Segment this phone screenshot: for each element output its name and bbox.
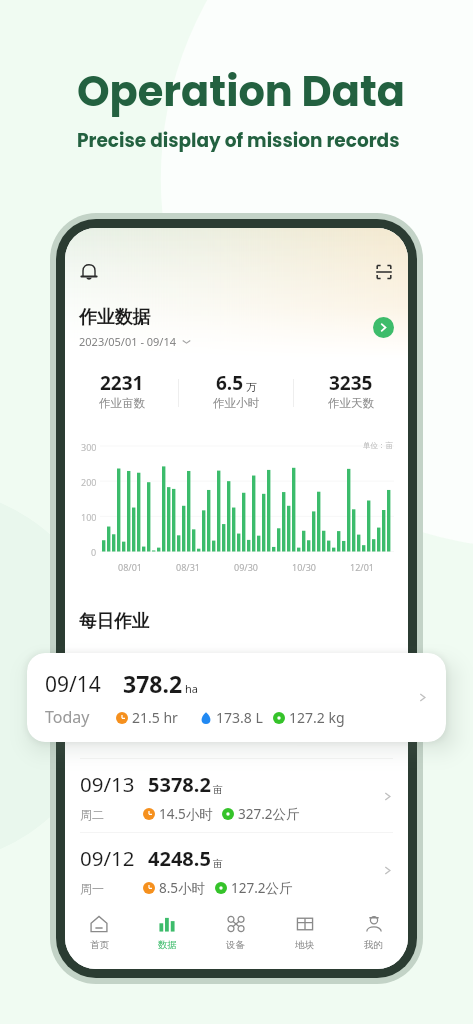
staticText: 我的: [364, 939, 383, 951]
staticText: 作业小时: [213, 396, 259, 410]
staticText: 万: [246, 380, 257, 394]
button[interactable]: 首页: [65, 901, 133, 969]
staticText: 地块: [295, 939, 314, 951]
button[interactable]: 09/14: [27, 653, 446, 742]
staticText: 09/30: [234, 561, 258, 573]
staticText: 0: [91, 546, 97, 558]
staticText: 亩: [213, 857, 223, 870]
staticText: 数据: [158, 939, 177, 951]
staticText: 单位：亩: [363, 441, 393, 450]
staticText: 10/30: [292, 561, 316, 573]
staticText: Today: [45, 706, 90, 728]
button[interactable]: 地块: [270, 901, 339, 969]
staticText: 327.2公斤: [238, 805, 300, 823]
button[interactable]: 09/12: [65, 833, 408, 907]
button[interactable]: 设备: [201, 901, 270, 969]
staticText: 亩: [213, 783, 223, 796]
button[interactable]: 数据: [133, 901, 201, 969]
staticText: 09/12: [80, 844, 135, 872]
button[interactable]: Scan: [374, 262, 394, 282]
staticText: 127.2公斤: [231, 879, 293, 897]
staticText: ha: [185, 681, 198, 696]
staticText: 08/31: [176, 561, 200, 573]
staticText: 首页: [90, 939, 109, 951]
staticText: 2023/05/01 - 09/14: [79, 334, 177, 349]
staticText: 09/13: [80, 770, 135, 798]
staticText: 08/01: [118, 561, 142, 573]
staticText: 5378.2: [148, 771, 211, 798]
staticText: 14.5小时: [159, 805, 213, 823]
staticText: 3235: [329, 370, 373, 396]
staticText: 21.5 hr: [132, 708, 178, 727]
staticText: 作业天数: [328, 396, 374, 410]
staticText: 作业亩数: [99, 396, 145, 410]
button[interactable]: Notifications: [79, 262, 99, 282]
staticText: 设备: [226, 939, 245, 951]
staticText: Precise display of mission records: [77, 128, 400, 154]
staticText: 4248.5: [148, 845, 211, 872]
button[interactable]: Next: [373, 317, 394, 338]
staticText: 12/01: [350, 561, 374, 573]
button[interactable]: 2231: [65, 370, 178, 415]
staticText: 100: [81, 511, 97, 523]
staticText: 8.5小时: [159, 879, 206, 897]
staticText: 300: [81, 441, 97, 453]
staticText: 6.5: [216, 370, 244, 396]
button[interactable]: 6.5: [179, 370, 293, 415]
staticText: 09/14: [45, 670, 101, 699]
staticText: 173.8 L: [216, 708, 263, 727]
staticText: 127.2 kg: [289, 708, 345, 727]
staticText: 每日作业: [79, 610, 149, 632]
staticText: 378.2: [123, 668, 183, 699]
staticText: 200: [81, 476, 97, 488]
staticText: 2231: [100, 370, 144, 396]
staticText: 周一: [80, 881, 104, 896]
staticText: Operation Data: [77, 62, 405, 120]
staticText: 周二: [80, 807, 104, 822]
button[interactable]: 3235: [294, 370, 408, 415]
button[interactable]: 我的: [339, 901, 408, 969]
staticText: 作业数据: [79, 306, 151, 328]
button[interactable]: 09/13: [65, 759, 408, 833]
